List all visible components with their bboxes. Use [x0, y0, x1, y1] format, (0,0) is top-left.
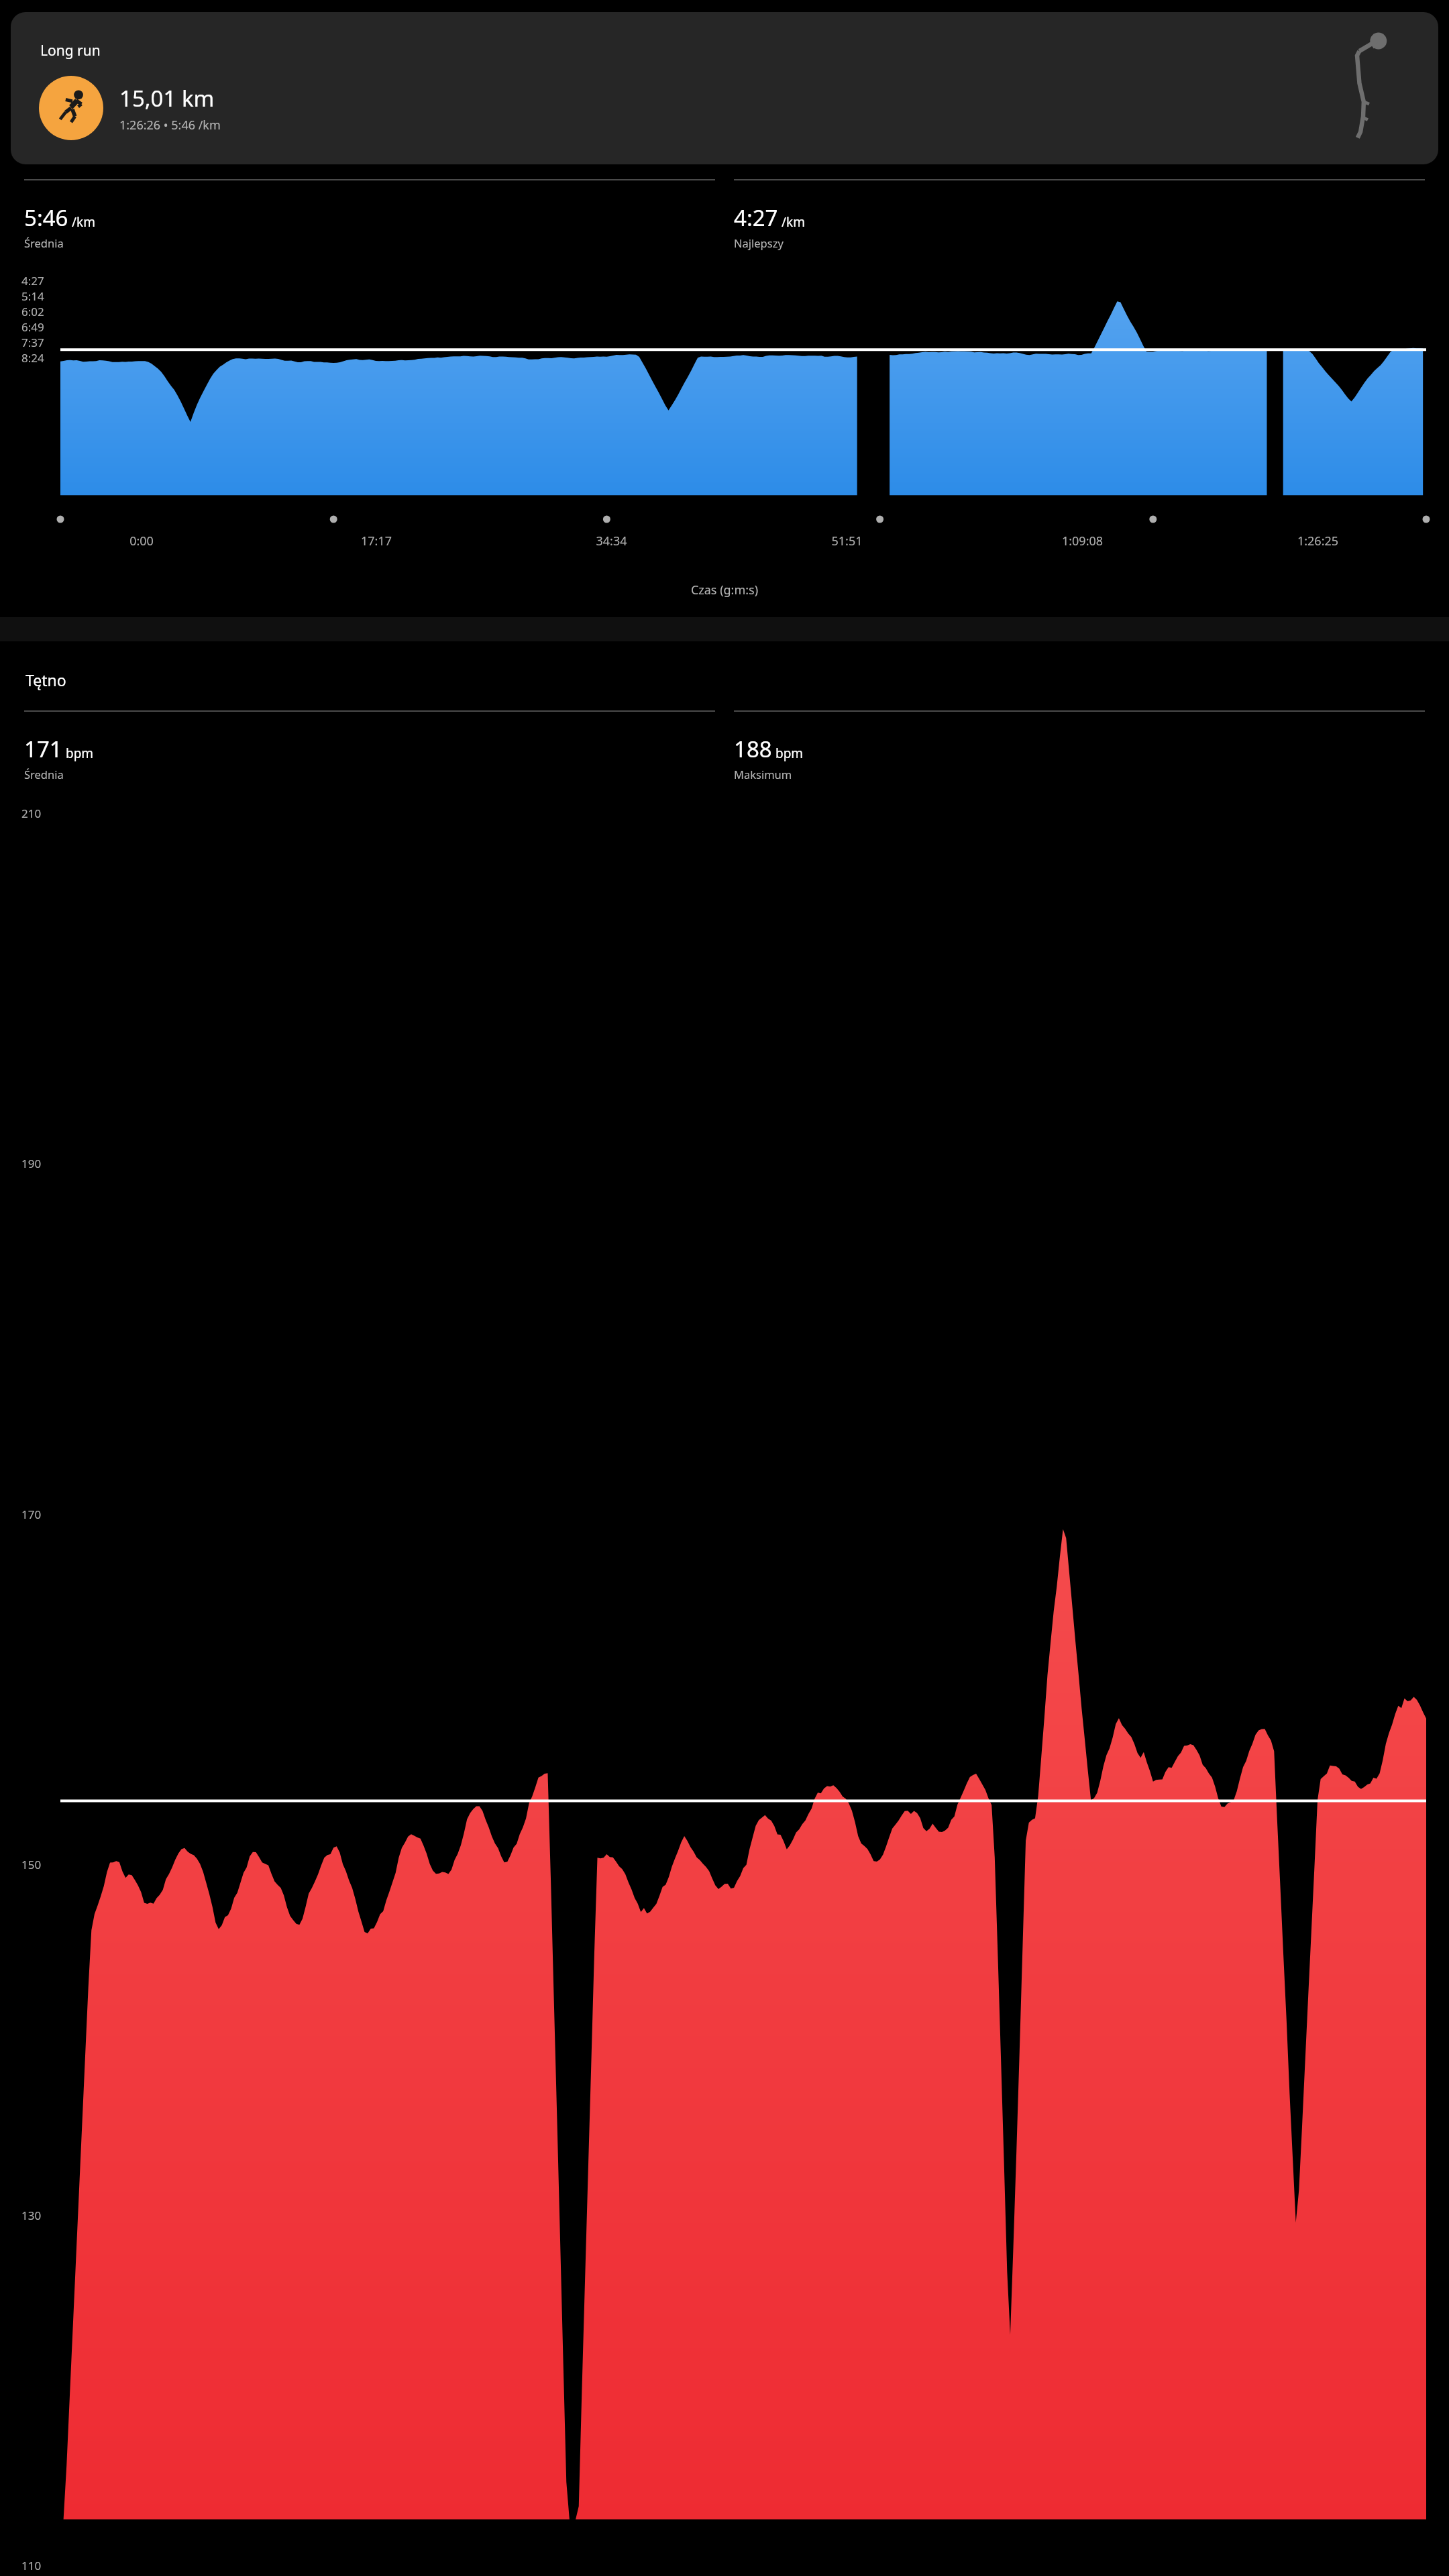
staticText: 210	[21, 806, 42, 821]
staticText: 4:27	[21, 273, 44, 288]
button[interactable]: 171	[24, 710, 715, 782]
staticText: 34:34	[494, 533, 729, 549]
staticText: 51:51	[729, 533, 965, 549]
staticText: 7:37	[21, 335, 44, 350]
staticText: Średnia	[24, 767, 64, 782]
staticText: 190	[21, 1156, 42, 1171]
staticText: 0:00	[24, 533, 259, 549]
staticText: 171	[24, 734, 62, 764]
staticText: Maksimum	[734, 767, 792, 782]
staticText: 188	[734, 734, 772, 764]
staticText: 6:02	[21, 304, 44, 319]
staticText: /km	[782, 213, 805, 231]
staticText: 5:14	[21, 288, 44, 304]
staticText: 5:46	[24, 203, 68, 233]
staticText: 4:27	[734, 203, 778, 233]
staticText: /km	[72, 213, 95, 231]
button[interactable]: 4:27	[734, 179, 1425, 250]
staticText: 15,01 km	[119, 83, 215, 113]
staticText: Tętno	[25, 669, 66, 690]
staticText: Średnia	[24, 235, 64, 250]
staticText: bpm	[775, 745, 804, 762]
staticText: Long run	[40, 41, 101, 60]
button[interactable]: 188	[734, 710, 1425, 782]
staticText: 150	[21, 1857, 42, 1872]
staticText: bpm	[66, 745, 94, 762]
staticText: 170	[21, 1507, 42, 1522]
button[interactable]: 5:46	[24, 179, 715, 250]
staticText: 17:17	[259, 533, 494, 549]
staticText: 1:09:08	[965, 533, 1200, 549]
staticText: 110	[21, 2558, 42, 2573]
staticText: 6:49	[21, 319, 44, 335]
staticText: 1:26:25	[1200, 533, 1436, 549]
button[interactable]: Long run	[11, 12, 1438, 164]
staticText: 8:24	[21, 350, 44, 366]
staticText: Czas (g:m:s)	[0, 582, 1449, 598]
staticText: 130	[21, 2208, 42, 2223]
staticText: Najlepszy	[734, 235, 784, 250]
staticText: 1:26:26 • 5:46 /km	[119, 117, 221, 133]
